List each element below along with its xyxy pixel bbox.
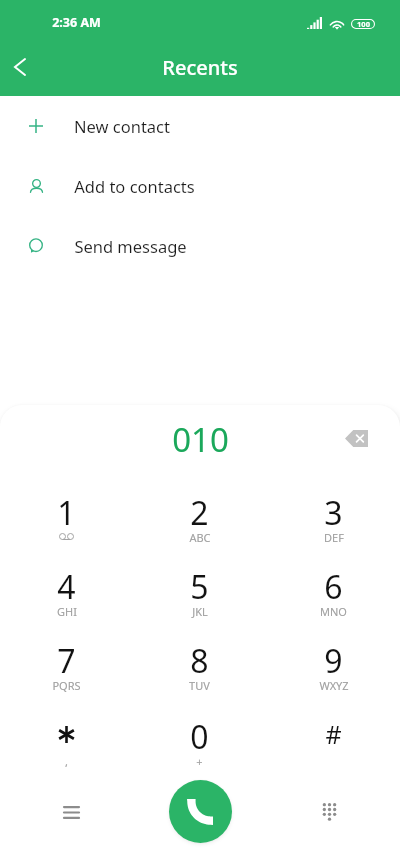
staticText: 1 bbox=[57, 491, 76, 535]
button[interactable]: Keypad bbox=[307, 790, 351, 834]
button[interactable]: More options bbox=[49, 790, 93, 834]
staticText: PQRS bbox=[52, 678, 81, 693]
button[interactable]: 1 bbox=[0, 487, 133, 561]
staticText: TUV bbox=[189, 678, 210, 693]
staticText: 6 bbox=[324, 565, 343, 609]
staticText: DEF bbox=[324, 530, 344, 545]
button[interactable]: # bbox=[267, 710, 400, 784]
staticText: JKL bbox=[192, 604, 208, 619]
button[interactable]: 0 bbox=[133, 710, 266, 784]
staticText: GHI bbox=[57, 604, 77, 619]
staticText: 0 bbox=[190, 715, 209, 759]
staticText: Recents bbox=[162, 54, 238, 81]
button[interactable]: 2 bbox=[133, 487, 266, 561]
button[interactable]: Call bbox=[169, 780, 232, 843]
button[interactable]: 9 bbox=[267, 635, 400, 709]
staticText: 3 bbox=[324, 491, 343, 535]
staticText: Add to contacts bbox=[74, 175, 195, 197]
button[interactable]: Add to contacts bbox=[0, 156, 400, 216]
button[interactable]: Back bbox=[0, 47, 40, 87]
staticText: Send message bbox=[74, 235, 187, 257]
button[interactable]: 5 bbox=[133, 561, 266, 635]
staticText: MNO bbox=[320, 604, 347, 619]
button[interactable]: 8 bbox=[133, 635, 266, 709]
button[interactable]: 7 bbox=[0, 635, 133, 709]
button[interactable]: New contact bbox=[0, 96, 400, 156]
staticText: 9 bbox=[324, 639, 343, 683]
button[interactable]: 3 bbox=[267, 487, 400, 561]
staticText: 4 bbox=[57, 565, 76, 609]
button[interactable]: 6 bbox=[267, 561, 400, 635]
staticText: 100 bbox=[357, 19, 370, 29]
staticText: WXYZ bbox=[319, 678, 349, 693]
staticText: New contact bbox=[74, 115, 170, 137]
staticText: + bbox=[196, 754, 203, 769]
button[interactable]: , bbox=[0, 710, 133, 784]
button[interactable]: Send message bbox=[0, 216, 400, 276]
staticText: 2 bbox=[190, 491, 209, 535]
staticText: # bbox=[325, 717, 342, 751]
button[interactable]: 4 bbox=[0, 561, 133, 635]
staticText: 7 bbox=[57, 639, 76, 683]
button[interactable]: Backspace bbox=[336, 418, 376, 458]
staticText: 010 bbox=[172, 417, 229, 462]
staticText: , bbox=[65, 754, 68, 769]
staticText: 8 bbox=[190, 639, 209, 683]
staticText: 2:36 AM bbox=[52, 14, 101, 31]
staticText: 5 bbox=[190, 565, 209, 609]
staticText: ABC bbox=[189, 530, 211, 545]
